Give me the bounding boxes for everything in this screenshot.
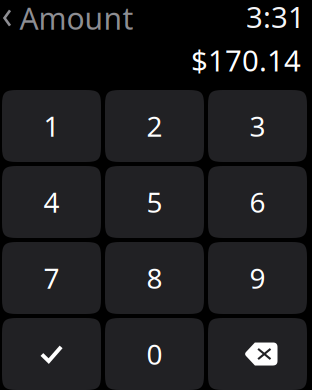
- staticText: $170.14: [191, 40, 301, 80]
- button[interactable]: 1: [2, 90, 101, 162]
- staticText: 6: [249, 183, 265, 221]
- button[interactable]: 0: [105, 318, 204, 390]
- staticText: 5: [146, 183, 162, 221]
- button[interactable]: Amount: [0, 0, 139, 33]
- staticText: 9: [249, 259, 265, 297]
- staticText: 0: [146, 335, 162, 373]
- staticText: 8: [146, 259, 162, 297]
- button[interactable]: 8: [105, 242, 204, 314]
- staticText: 7: [43, 259, 59, 297]
- button[interactable]: 2: [105, 90, 204, 162]
- button[interactable]: 7: [2, 242, 101, 314]
- staticText: Amount: [19, 0, 133, 38]
- button[interactable]: 4: [2, 166, 101, 238]
- staticText: 1: [43, 107, 59, 145]
- button[interactable]: Delete: [208, 318, 307, 390]
- button[interactable]: Confirm amount: [2, 318, 101, 390]
- button[interactable]: 3: [208, 90, 307, 162]
- staticText: 3:31: [246, 0, 305, 36]
- button[interactable]: 5: [105, 166, 204, 238]
- button[interactable]: 9: [208, 242, 307, 314]
- staticText: 2: [146, 107, 162, 145]
- staticText: 3: [249, 107, 265, 145]
- button[interactable]: 6: [208, 166, 307, 238]
- staticText: 4: [43, 183, 59, 221]
